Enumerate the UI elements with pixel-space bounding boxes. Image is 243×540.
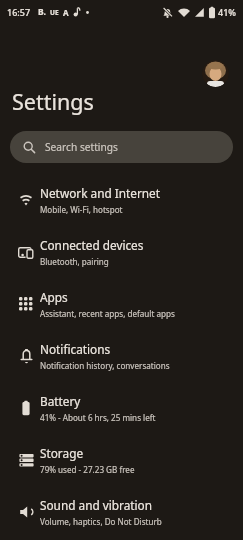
button[interactable] [202, 60, 229, 87]
button[interactable]: Apps [0, 278, 243, 330]
button[interactable]: Battery [0, 382, 243, 434]
staticText: Settings [12, 87, 94, 116]
staticText: Bluetooth, pairing [40, 256, 109, 267]
button[interactable]: Storage [0, 434, 243, 486]
staticText: Battery [40, 393, 81, 409]
staticText: Network and Internet [40, 185, 161, 201]
staticText: 41% [218, 6, 236, 18]
staticText: Notification history, conversations [40, 360, 170, 371]
staticText: Search settings [45, 140, 118, 154]
staticText: Mobile, Wi-Fi, hotspot [40, 204, 123, 215]
staticText: 16:57 [7, 6, 31, 18]
staticText: Sound and vibration [40, 497, 153, 513]
button[interactable]: Network and Internet [0, 174, 243, 226]
staticText: Connected devices [40, 237, 144, 253]
staticText: 79% used - 27.23 GB free [40, 464, 135, 475]
staticText: Apps [40, 289, 68, 305]
button[interactable]: Sound and vibration [0, 486, 243, 538]
button[interactable]: Notifications [0, 330, 243, 382]
button[interactable]: Connected devices [0, 226, 243, 278]
staticText: UE [50, 8, 59, 17]
staticText: B. [38, 6, 46, 18]
button[interactable]: Search settings [10, 131, 233, 163]
staticText: Volume, haptics, Do Not Disturb [40, 516, 162, 527]
staticText: 41% - About 6 hrs, 25 mins left [40, 412, 156, 423]
staticText: A [63, 7, 69, 18]
staticText: Notifications [40, 341, 111, 357]
staticText: Assistant, recent apps, default apps [40, 308, 175, 319]
staticText: Storage [40, 445, 84, 461]
